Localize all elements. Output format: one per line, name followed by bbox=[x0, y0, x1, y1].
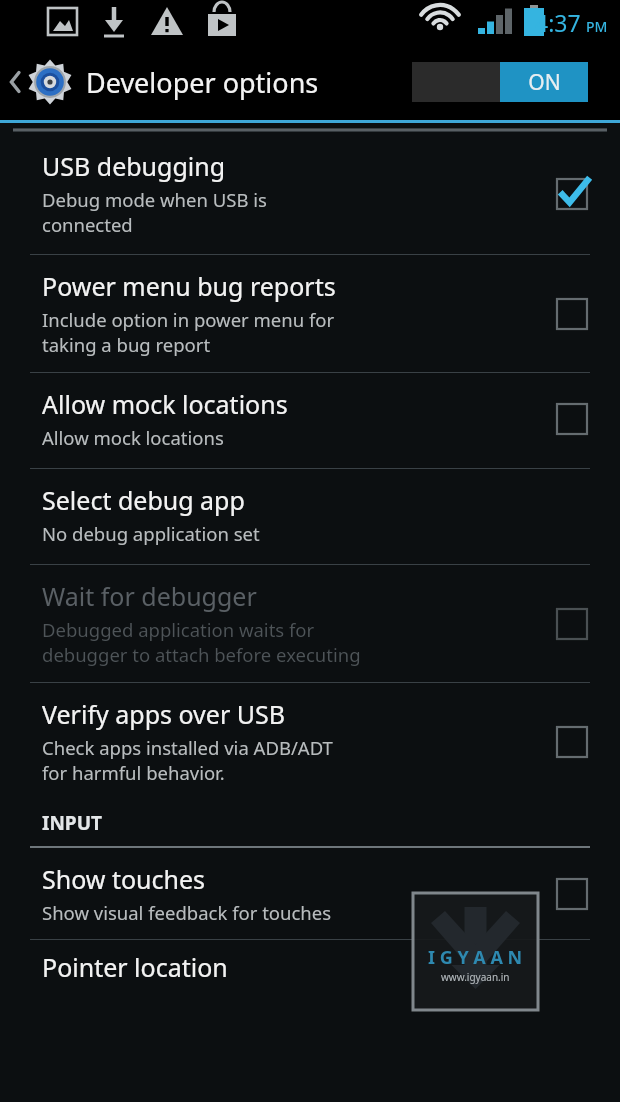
staticText: Wait for debugger bbox=[42, 579, 257, 613]
button[interactable]: Select debug app bbox=[0, 469, 620, 564]
button[interactable]: Developer options on/off switch bbox=[412, 62, 588, 102]
staticText: Check apps installed via ADB/ADT for har… bbox=[42, 735, 333, 786]
staticText: Pointer location bbox=[42, 950, 228, 984]
staticText: Include option in power menu for taking … bbox=[42, 307, 335, 358]
staticText: I G Y A A N bbox=[428, 945, 523, 970]
staticText: Developer options bbox=[86, 64, 319, 101]
button[interactable]: Wait for debugger bbox=[0, 565, 620, 682]
staticText: PM bbox=[586, 17, 608, 36]
button[interactable]: Power menu bug reports bbox=[0, 255, 620, 372]
staticText: ON bbox=[528, 68, 561, 97]
button[interactable]: Allow mock locations bbox=[0, 373, 620, 468]
button[interactable]: USB debugging bbox=[0, 137, 620, 254]
staticText: Allow mock locations bbox=[42, 425, 224, 450]
staticText: Select debug app bbox=[42, 483, 245, 517]
staticText: Verify apps over USB bbox=[42, 697, 285, 731]
staticText: Show touches bbox=[42, 862, 206, 896]
button[interactable]: Pointer location bbox=[0, 940, 620, 998]
staticText: USB debugging bbox=[42, 149, 226, 183]
staticText: No debug application set bbox=[42, 521, 260, 546]
staticText: INPUT bbox=[42, 810, 102, 836]
staticText: Debugged application waits for debugger … bbox=[42, 617, 361, 668]
staticText: Debug mode when USB is connected bbox=[42, 187, 267, 238]
staticText: www.igyaan.in bbox=[441, 970, 510, 984]
button[interactable]: Navigate up: Developer options bbox=[0, 44, 412, 120]
staticText: Power menu bug reports bbox=[42, 269, 336, 303]
button[interactable]: Show touches bbox=[0, 848, 620, 939]
staticText: 4:37 bbox=[535, 7, 581, 38]
button[interactable]: Verify apps over USB bbox=[0, 683, 620, 792]
staticText: Allow mock locations bbox=[42, 387, 288, 421]
staticText: Show visual feedback for touches bbox=[42, 900, 332, 925]
